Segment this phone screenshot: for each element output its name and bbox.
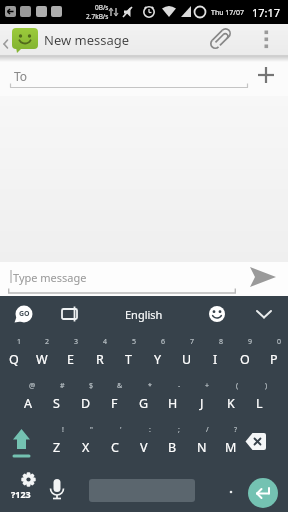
staticText: L: [256, 395, 263, 412]
staticText: ;: [178, 425, 180, 435]
staticText: M: [225, 439, 237, 456]
staticText: *: [148, 381, 152, 391]
staticText: ?123: [11, 488, 31, 500]
staticText: B: [168, 439, 177, 456]
staticText: To: [14, 68, 28, 84]
staticText: X: [82, 439, 90, 456]
staticText: English: [125, 307, 163, 322]
staticText: Z: [53, 439, 61, 456]
staticText: New message: [44, 31, 130, 49]
staticText: J: [200, 395, 204, 412]
staticText: A: [24, 395, 32, 412]
staticText: 4: [103, 337, 108, 347]
staticText: T: [125, 351, 132, 368]
staticText: S: [53, 395, 60, 412]
staticText: ": [90, 425, 93, 435]
staticText: 17:17: [252, 5, 281, 20]
staticText: 1: [17, 337, 22, 347]
staticText: 5: [132, 337, 137, 347]
staticText: $: [89, 381, 94, 391]
staticText: N: [197, 439, 207, 456]
staticText: /: [206, 425, 209, 435]
staticText: 8: [219, 337, 224, 347]
staticText: I: [213, 351, 218, 368]
staticText: O: [240, 351, 250, 368]
staticText: ): [265, 381, 268, 391]
staticText: ': [120, 425, 122, 435]
staticText: -: [178, 381, 181, 391]
staticText: (: [236, 381, 239, 391]
staticText: F: [111, 395, 118, 412]
staticText: U: [182, 351, 192, 368]
staticText: C: [111, 439, 119, 456]
staticText: 6: [161, 337, 166, 347]
staticText: :: [149, 425, 151, 435]
staticText: 9: [248, 337, 253, 347]
staticText: K: [227, 395, 235, 412]
staticText: GO: [19, 309, 30, 319]
staticText: G: [139, 395, 149, 412]
staticText: P: [270, 351, 278, 368]
staticText: +: [205, 381, 210, 391]
staticText: &: [117, 381, 123, 391]
staticText: 2.7kB/s: [86, 12, 109, 21]
staticText: R: [96, 351, 104, 368]
staticText: H: [168, 395, 178, 412]
staticText: !: [62, 425, 64, 435]
staticText: 3: [74, 337, 79, 347]
staticText: W: [36, 351, 48, 368]
staticText: Q: [9, 351, 19, 368]
staticText: 2: [45, 337, 50, 347]
staticText: Thu 17/07: [211, 8, 244, 18]
staticText: D: [81, 395, 91, 412]
staticText: E: [67, 351, 74, 368]
staticText: 0: [277, 337, 282, 347]
staticText: Y: [154, 351, 162, 368]
staticText: Type message: [13, 270, 87, 285]
staticText: V: [140, 439, 148, 456]
staticText: @: [29, 381, 36, 391]
staticText: 7: [190, 337, 195, 347]
staticText: ?: [234, 425, 238, 435]
staticText: 0B/s: [95, 3, 109, 12]
staticText: #: [60, 381, 65, 391]
